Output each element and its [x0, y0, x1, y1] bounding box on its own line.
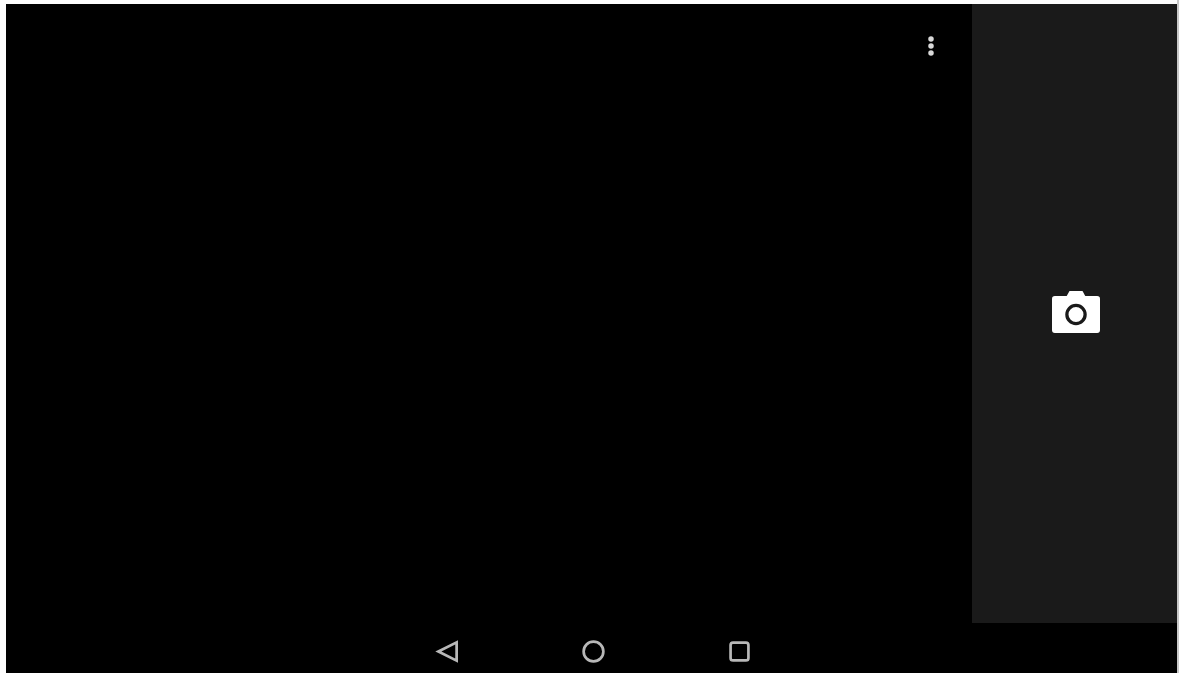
button[interactable]: Recent apps [709, 629, 769, 673]
button[interactable]: Home [563, 629, 623, 673]
button[interactable]: Back [417, 629, 477, 673]
button[interactable]: Take photo [1026, 262, 1126, 362]
button[interactable]: More options [903, 18, 959, 74]
